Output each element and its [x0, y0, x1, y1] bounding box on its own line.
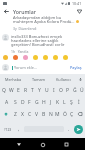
- button[interactable]: Sort: [73, 7, 85, 15]
- staticText: Merhaba: [5, 77, 22, 82]
- staticText: Ş: [70, 99, 73, 106]
- staticText: Ü: [80, 87, 84, 94]
- button[interactable]: I: [50, 84, 57, 96]
- staticText: Ç: [70, 111, 74, 118]
- staticText: ,: [18, 126, 20, 133]
- staticText: Y: [38, 87, 41, 94]
- staticText: U: [45, 87, 49, 94]
- staticText: ?123: [4, 127, 12, 132]
- staticText: İ: [78, 99, 80, 106]
- button[interactable]: ?123: [1, 120, 15, 138]
- staticText: 1h Yanıtla: [11, 49, 29, 53]
- staticText: Z: [14, 111, 17, 118]
- button[interactable]: D: [19, 96, 26, 108]
- staticText: .: [68, 126, 70, 133]
- staticText: D: [21, 99, 25, 106]
- button[interactable]: Ü: [78, 84, 85, 96]
- staticText: S: [14, 99, 17, 106]
- staticText: Yorum ekle...: [14, 65, 38, 70]
- button[interactable]: Emoji: [40, 53, 50, 61]
- button[interactable]: Voice input: [76, 74, 85, 84]
- button[interactable]: Ö: [61, 108, 68, 120]
- button[interactable]: C: [26, 108, 33, 120]
- button[interactable]: O: [57, 84, 64, 96]
- staticText: Arkadaşımdan aldığım bu muhteşem Ayoka K…: [13, 15, 76, 25]
- button[interactable]: Backspace: [75, 108, 85, 120]
- button[interactable]: J: [47, 96, 54, 108]
- button[interactable]: T: [29, 84, 36, 96]
- staticText: Ö: [63, 111, 67, 118]
- button[interactable]: Y: [36, 84, 43, 96]
- staticText: X: [21, 111, 24, 118]
- button[interactable]: W: [8, 84, 15, 96]
- button[interactable]: E: [15, 84, 22, 96]
- staticText: J: [50, 99, 52, 106]
- staticText: Ğ: [73, 87, 77, 94]
- staticText: Paylaş: [70, 65, 82, 70]
- button[interactable]: P: [64, 84, 71, 96]
- staticText: 3y Düzenlendi: [13, 26, 37, 31]
- button[interactable]: Z: [11, 108, 19, 120]
- button[interactable]: Q: [0, 84, 8, 96]
- button[interactable]: U: [43, 84, 50, 96]
- button[interactable]: Ğ: [71, 84, 78, 96]
- staticText: T: [31, 87, 34, 94]
- button[interactable]: L: [61, 96, 68, 108]
- button[interactable]: Tamam: [26, 74, 51, 84]
- button[interactable]: Back: [0, 7, 13, 15]
- button[interactable]: Period: [65, 120, 73, 138]
- staticText: F: [28, 99, 31, 106]
- staticText: L: [63, 99, 66, 106]
- staticText: P: [66, 87, 70, 94]
- button[interactable]: Home: [37, 139, 48, 150]
- button[interactable]: G: [33, 96, 40, 108]
- staticText: V: [35, 111, 39, 118]
- button[interactable]: Emoji: [10, 53, 20, 61]
- button[interactable]: Recents: [61, 139, 72, 150]
- button[interactable]: Ş: [68, 96, 75, 108]
- staticText: W: [9, 87, 14, 94]
- button[interactable]: Emoji: [20, 53, 30, 61]
- button[interactable]: İ: [75, 96, 82, 108]
- staticText: Q: [2, 87, 6, 94]
- button[interactable]: Emoji: [50, 53, 60, 61]
- button[interactable]: V: [33, 108, 40, 120]
- button[interactable]: Back: [13, 139, 24, 150]
- staticText: Yorumlar: [13, 8, 36, 15]
- button[interactable]: Merhaba: [0, 74, 26, 84]
- button[interactable]: M: [54, 108, 61, 120]
- button[interactable]: R: [22, 84, 29, 96]
- button[interactable]: Emoji: [0, 53, 10, 61]
- staticText: R: [24, 87, 28, 94]
- button[interactable]: Emoji: [60, 53, 70, 61]
- button[interactable]: Kullanıcı: [51, 74, 76, 84]
- button[interactable]: S: [11, 96, 19, 108]
- staticText: 10:41: [72, 1, 82, 6]
- staticText: K: [56, 99, 60, 106]
- button[interactable]: A: [3, 96, 11, 108]
- button[interactable]: Ç: [68, 108, 75, 120]
- staticText: M: [55, 111, 60, 118]
- staticText: G: [35, 99, 39, 106]
- staticText: insllo333 Bonuzhost emçek hazırladıns el…: [11, 34, 67, 48]
- button[interactable]: Paylaş: [69, 64, 83, 71]
- staticText: C: [28, 111, 32, 118]
- button[interactable]: F: [26, 96, 33, 108]
- button[interactable]: B: [40, 108, 47, 120]
- staticText: Kullanıcı: [56, 77, 71, 82]
- staticText: O: [59, 87, 63, 94]
- staticText: B: [42, 111, 46, 118]
- button[interactable]: Shift: [0, 108, 11, 120]
- button[interactable]: X: [19, 108, 26, 120]
- staticText: I: [53, 87, 55, 94]
- button[interactable]: Comma: [15, 120, 23, 138]
- staticText: E: [17, 87, 20, 94]
- staticText: H: [42, 99, 46, 106]
- button[interactable]: Send: [74, 125, 83, 134]
- button[interactable]: H: [40, 96, 47, 108]
- staticText: Tamam: [32, 77, 46, 82]
- button[interactable]: Emoji: [30, 53, 40, 61]
- button[interactable]: K: [54, 96, 61, 108]
- button[interactable]: N: [47, 108, 54, 120]
